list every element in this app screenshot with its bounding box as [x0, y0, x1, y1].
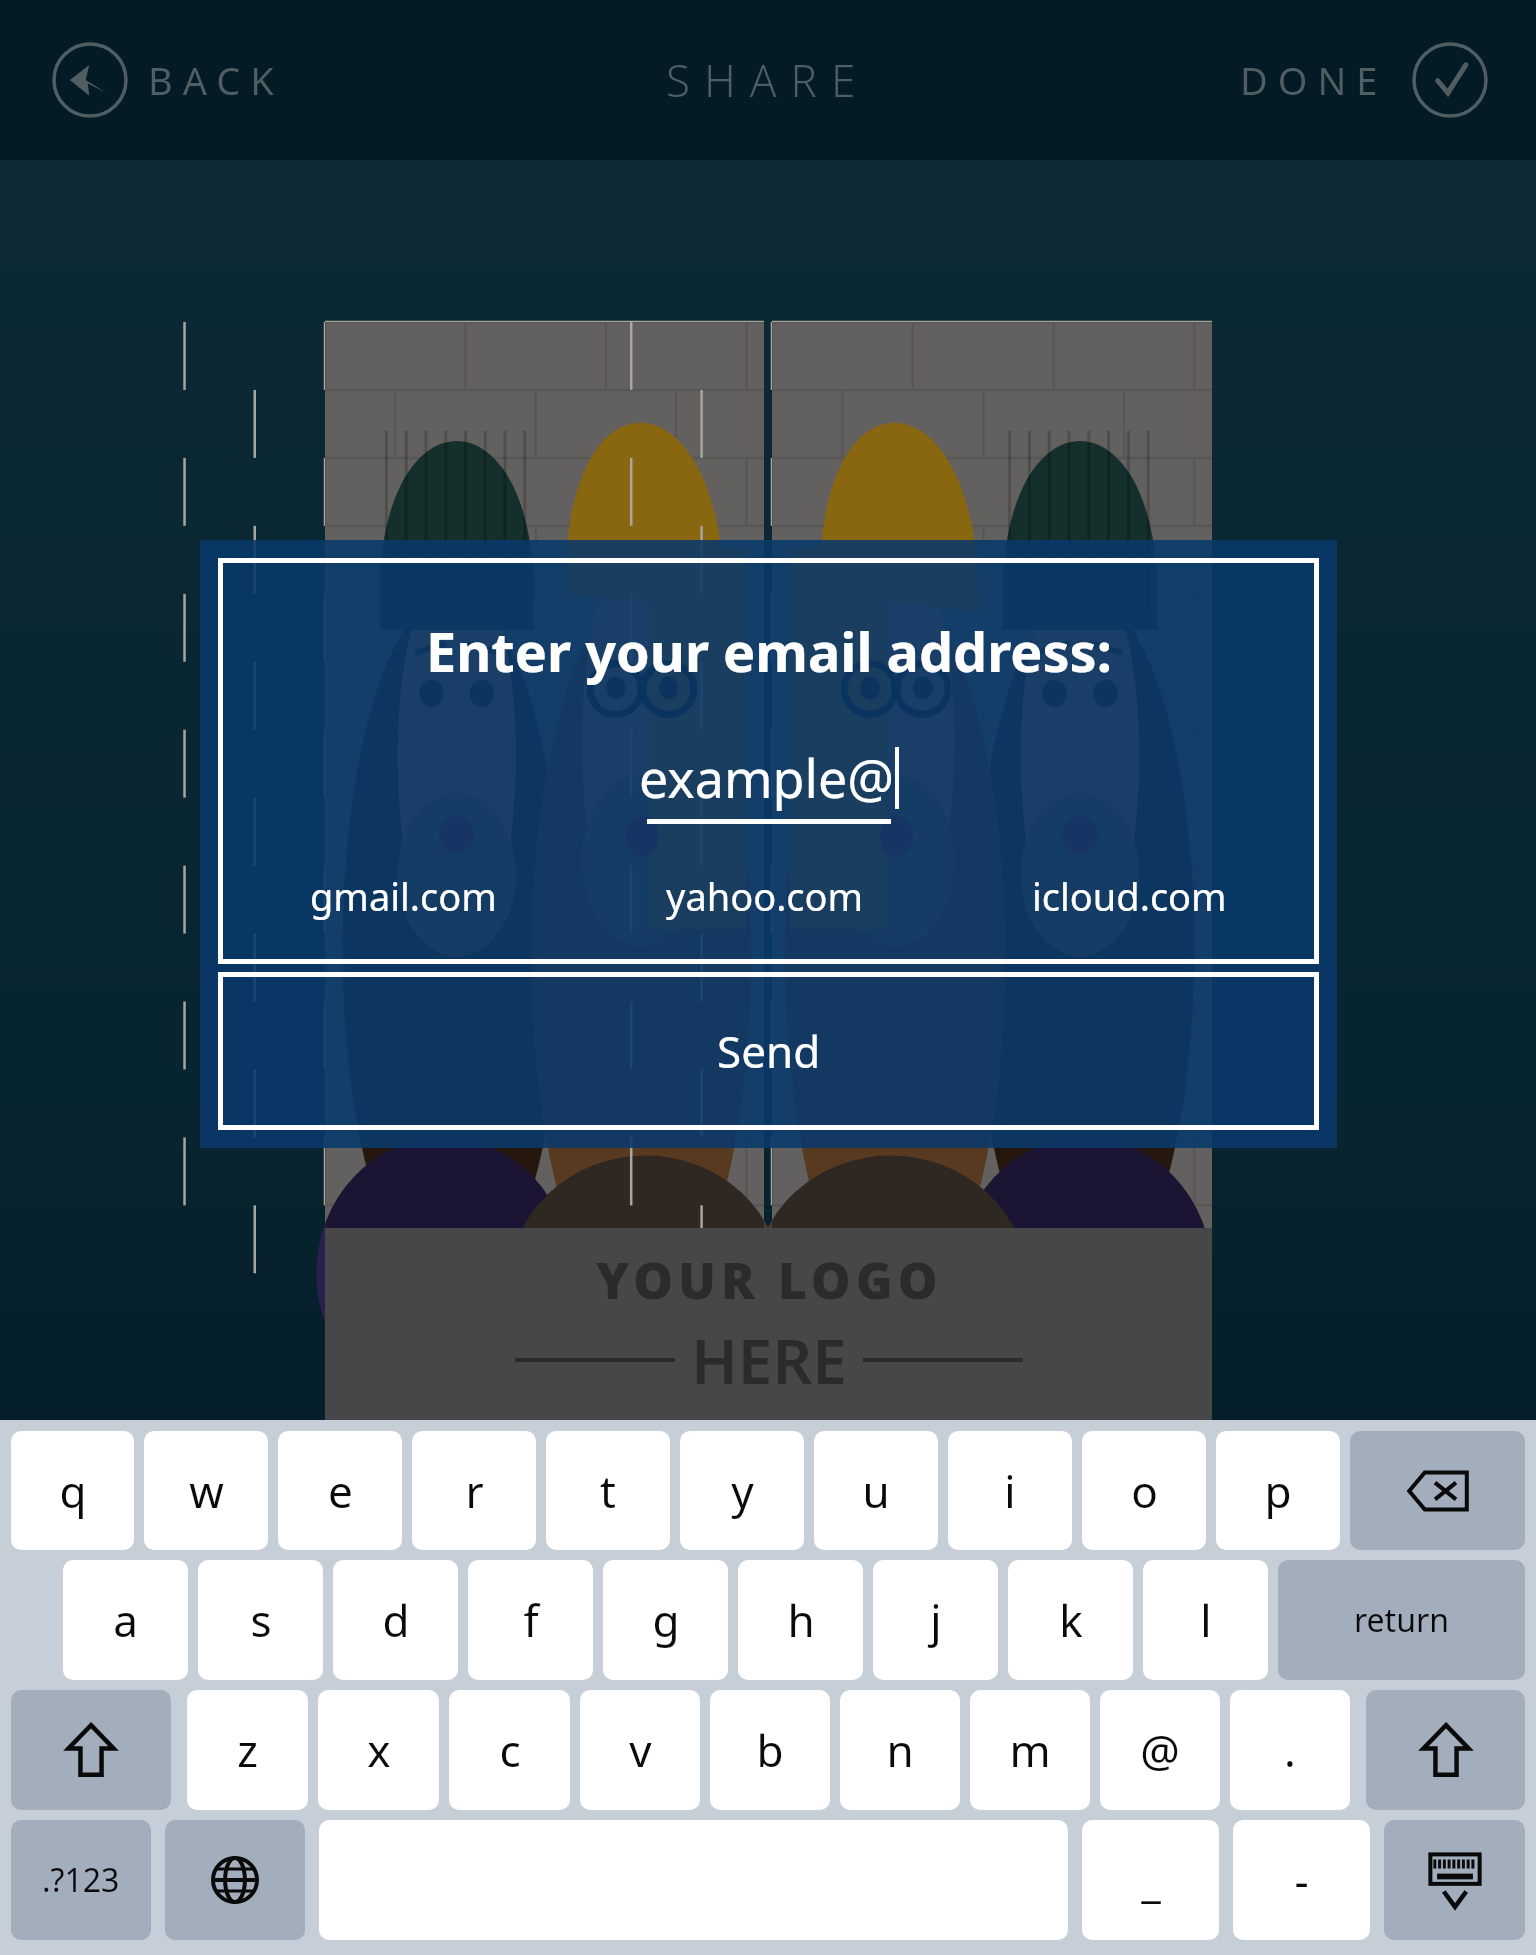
staticText: @	[1140, 1720, 1180, 1780]
staticText: w	[189, 1461, 224, 1521]
staticText: g	[652, 1590, 680, 1650]
staticText: q	[59, 1461, 87, 1521]
staticText: return	[1354, 1598, 1449, 1642]
staticText: .	[1284, 1720, 1296, 1780]
button[interactable]: g	[603, 1560, 728, 1680]
button[interactable]: e	[278, 1431, 402, 1550]
button[interactable]: l	[1143, 1560, 1268, 1680]
staticText: .?123	[42, 1858, 120, 1902]
staticText: Send	[717, 1021, 821, 1081]
staticText: a	[113, 1590, 138, 1650]
button[interactable]: gmail.com	[304, 864, 503, 928]
staticText: m	[1009, 1720, 1051, 1780]
button[interactable]: o	[1082, 1431, 1206, 1550]
button[interactable]: Send	[218, 972, 1319, 1130]
staticText: k	[1059, 1590, 1083, 1650]
button[interactable]: m	[970, 1690, 1090, 1810]
button[interactable]: Hide keyboard	[1384, 1820, 1525, 1940]
button[interactable]: f	[468, 1560, 593, 1680]
button[interactable]: t	[546, 1431, 670, 1550]
staticText: p	[1264, 1461, 1292, 1521]
staticText: n	[886, 1720, 914, 1780]
button[interactable]: Backspace	[1350, 1431, 1525, 1550]
button[interactable]: -	[1233, 1820, 1370, 1940]
staticText: _	[1141, 1850, 1161, 1910]
button[interactable]: y	[680, 1431, 804, 1550]
button[interactable]: z	[187, 1690, 308, 1810]
staticText: x	[367, 1720, 391, 1780]
button[interactable]: q	[11, 1431, 134, 1550]
staticText: -	[1294, 1850, 1309, 1910]
button[interactable]: p	[1216, 1431, 1340, 1550]
staticText: h	[787, 1590, 815, 1650]
staticText: r	[465, 1461, 484, 1521]
button[interactable]: @	[1100, 1690, 1220, 1810]
staticText: f	[523, 1590, 539, 1650]
staticText: t	[600, 1461, 616, 1521]
staticText: icloud.com	[1032, 870, 1227, 922]
staticText: j	[930, 1590, 942, 1650]
staticText: d	[382, 1590, 410, 1650]
staticText: i	[1004, 1461, 1016, 1521]
staticText: yahoo.com	[666, 870, 864, 922]
button[interactable]: .	[1230, 1690, 1350, 1810]
button[interactable]: x	[318, 1690, 439, 1810]
button[interactable]: n	[840, 1690, 960, 1810]
button[interactable]: c	[449, 1690, 570, 1810]
staticText: y	[731, 1461, 754, 1521]
button[interactable]: Change language	[165, 1820, 305, 1940]
staticText: BACK	[148, 54, 284, 106]
button[interactable]: icloud.com	[1026, 864, 1233, 928]
staticText: YOUR LOGO	[596, 1246, 943, 1314]
button[interactable]: w	[144, 1431, 268, 1550]
button[interactable]: return	[1278, 1560, 1525, 1680]
button[interactable]: u	[814, 1431, 938, 1550]
staticText: o	[1131, 1461, 1158, 1521]
button[interactable]: Back	[52, 42, 284, 118]
staticText: gmail.com	[310, 870, 497, 922]
staticText: z	[237, 1720, 258, 1780]
button[interactable]: r	[412, 1431, 536, 1550]
button[interactable]: i	[948, 1431, 1072, 1550]
button[interactable]: .?123	[11, 1820, 151, 1940]
staticText: Enter your email address:	[426, 614, 1112, 688]
button[interactable]: k	[1008, 1560, 1133, 1680]
button[interactable]: Shift	[11, 1690, 171, 1810]
other: Done	[1412, 42, 1488, 118]
button[interactable]: v	[580, 1690, 700, 1810]
staticText: b	[756, 1720, 784, 1780]
button[interactable]: s	[198, 1560, 323, 1680]
staticText: l	[1200, 1590, 1212, 1650]
button[interactable]: yahoo.com	[660, 864, 870, 928]
button[interactable]: j	[873, 1560, 998, 1680]
staticText: c	[499, 1720, 521, 1780]
button[interactable]: d	[333, 1560, 458, 1680]
staticText: u	[862, 1461, 890, 1521]
staticText: s	[250, 1590, 272, 1650]
staticText: HERE	[691, 1318, 847, 1402]
button[interactable]: _	[1082, 1820, 1219, 1940]
button[interactable]: a	[63, 1560, 188, 1680]
button[interactable]: Shift	[1366, 1690, 1525, 1810]
staticText: v	[629, 1720, 652, 1780]
button[interactable]: b	[710, 1690, 830, 1810]
staticText: DONE	[1240, 54, 1388, 106]
staticText: SHARE	[666, 50, 870, 110]
other: Back	[52, 42, 128, 118]
staticText: example@	[639, 742, 895, 813]
staticText: e	[328, 1461, 353, 1521]
button[interactable]: DONE	[1240, 42, 1488, 118]
button[interactable]: h	[738, 1560, 863, 1680]
